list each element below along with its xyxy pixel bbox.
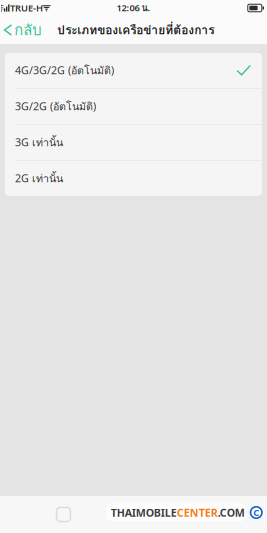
- staticText: 3G เท่านั้น: [15, 134, 63, 151]
- staticText: .COM: [218, 505, 245, 520]
- button[interactable]: 4G/3G/2G (อัตโนมัติ): [5, 53, 262, 88]
- staticText: 2G เท่านั้น: [15, 170, 63, 187]
- staticText: CENTER: [177, 505, 218, 520]
- staticText: THAIMOBILE: [111, 505, 177, 520]
- button[interactable]: 3G/2G (อัตโนมัติ): [5, 89, 262, 124]
- staticText: C: [253, 506, 259, 519]
- staticText: ประเภทของเครือข่ายที่ต้องการ: [57, 21, 214, 39]
- staticText: กลับ: [14, 19, 41, 41]
- staticText: TRUE-H: [10, 2, 43, 14]
- button[interactable]: กลับ: [0, 16, 47, 44]
- staticText: 12:06 น.: [116, 1, 150, 15]
- staticText: 4G/3G/2G (อัตโนมัติ): [15, 62, 114, 79]
- button[interactable]: 3G เท่านั้น: [5, 125, 262, 160]
- staticText: 3G/2G (อัตโนมัติ): [15, 98, 96, 115]
- button[interactable]: 2G เท่านั้น: [5, 161, 262, 196]
